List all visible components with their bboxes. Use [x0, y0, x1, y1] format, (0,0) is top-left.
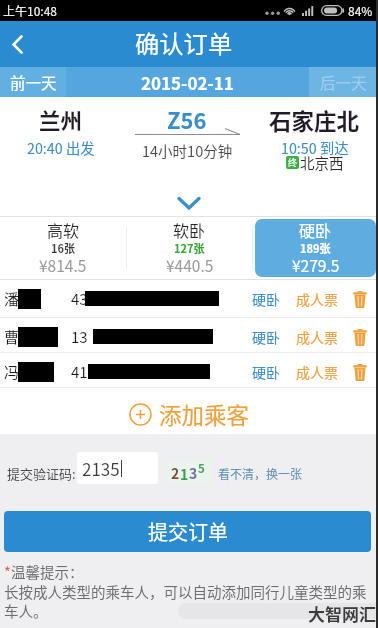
button[interactable]: 添加乘客	[0, 394, 378, 434]
staticText: 石家庄北	[269, 104, 360, 137]
staticText: 20:40 出发	[27, 137, 95, 158]
staticText: 上午10:48	[3, 2, 57, 19]
button[interactable]: Back	[0, 21, 44, 67]
staticText: 5	[198, 460, 205, 477]
staticText: 兰州	[39, 104, 83, 135]
staticText: ¥279.5	[292, 254, 340, 276]
staticText: 硬卧	[299, 219, 332, 241]
staticText: 2135	[82, 456, 120, 481]
button[interactable]: 硬卧	[252, 362, 280, 382]
button[interactable]: 提交订单	[4, 511, 371, 552]
staticText: 2015-02-11	[141, 70, 234, 95]
staticText: *	[4, 561, 11, 582]
staticText: 189张	[300, 240, 331, 256]
button[interactable]: Refresh captcha image	[167, 461, 211, 483]
button[interactable]: 前一天	[0, 67, 66, 97]
button[interactable]: 2135	[77, 452, 158, 484]
staticText: 41	[71, 361, 88, 383]
button[interactable]: 后一天	[309, 67, 378, 97]
staticText: 添加乘客	[159, 398, 250, 431]
staticText: 84%	[348, 2, 373, 19]
staticText: Z56	[167, 103, 207, 135]
staticText: 北京西	[300, 152, 344, 173]
staticText: 3	[189, 463, 198, 483]
staticText: 看不清，换一张	[218, 465, 303, 482]
button[interactable]: Delete passenger	[350, 325, 370, 349]
staticText: 高软	[47, 218, 80, 241]
staticText: 冯	[4, 361, 20, 383]
button[interactable]: Delete passenger	[350, 360, 370, 384]
staticText: ¥440.5	[166, 254, 214, 276]
staticText: 潘	[4, 288, 20, 310]
button[interactable]: Delete passenger	[350, 287, 370, 311]
staticText: 2	[171, 463, 180, 483]
staticText: 大智网汇	[308, 601, 376, 626]
staticText: 后一天	[320, 71, 367, 93]
staticText: 1	[180, 464, 189, 484]
staticText: 43	[71, 288, 88, 310]
button[interactable]: 看不清，换一张	[218, 465, 303, 482]
staticText: 软卧	[173, 218, 206, 241]
staticText: 长按成人类型的乘车人，可以自动添加同行儿童类型的乘车人。	[4, 581, 372, 621]
button[interactable]: 高软	[2, 219, 124, 277]
staticText: 16张	[51, 240, 75, 256]
button[interactable]: 曹	[0, 318, 378, 355]
staticText: ¥814.5	[39, 254, 87, 276]
button[interactable]: 成人票	[296, 289, 338, 309]
button[interactable]: 成人票	[296, 327, 338, 347]
staticText: 13	[71, 326, 88, 348]
button[interactable]: 冯	[0, 353, 378, 390]
staticText: 前一天	[10, 71, 57, 93]
staticText: 提交验证码:	[7, 464, 76, 483]
staticText: 确认订单	[135, 25, 233, 60]
button[interactable]: Show train details	[0, 191, 378, 216]
staticText: 127张	[174, 240, 205, 256]
button[interactable]: 硬卧	[255, 219, 376, 277]
staticText: 温馨提示：	[11, 561, 84, 582]
staticText: 10:50 到达	[281, 137, 349, 158]
staticText: 终	[288, 156, 298, 169]
staticText: 提交订单	[148, 517, 228, 546]
button[interactable]: 成人票	[296, 362, 338, 382]
button[interactable]: 软卧	[129, 219, 250, 277]
button[interactable]: 硬卧	[252, 327, 280, 347]
button[interactable]: 潘	[0, 280, 378, 317]
button[interactable]: 硬卧	[252, 289, 280, 309]
staticText: 14小时10分钟	[142, 140, 233, 161]
staticText: 曹	[4, 326, 20, 348]
